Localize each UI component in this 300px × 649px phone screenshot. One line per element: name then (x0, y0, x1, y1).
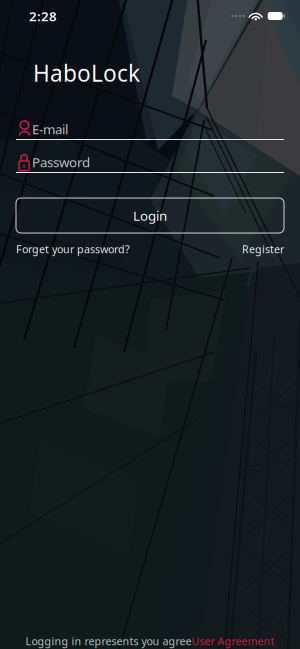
button[interactable]: Login (16, 198, 284, 233)
staticText: 2:28 (29, 7, 57, 25)
button[interactable]: User Agreement (191, 634, 274, 648)
button[interactable]: Register (242, 242, 284, 256)
button[interactable]: Forget your password? (16, 242, 130, 256)
staticText: E-mail (32, 120, 68, 138)
staticText: Login (133, 207, 167, 224)
staticText: Forget your password? (16, 242, 130, 256)
staticText: Register (242, 242, 284, 256)
staticText: Logging in represents you agree (25, 634, 191, 648)
staticText: HaboLock (33, 58, 140, 88)
staticText: User Agreement (191, 634, 274, 648)
staticText: Password (32, 153, 90, 171)
